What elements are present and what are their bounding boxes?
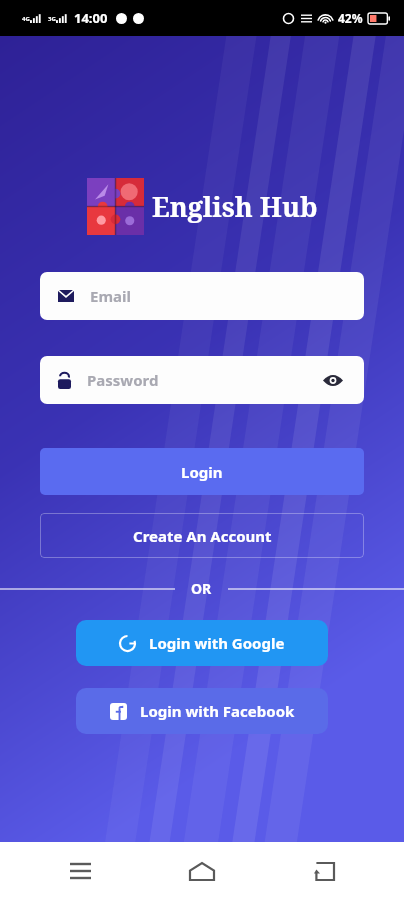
button[interactable]: Login with Facebook (76, 688, 328, 734)
staticText: OR (191, 579, 212, 598)
button[interactable]: Password (40, 356, 364, 404)
staticText: Login with Google (149, 633, 285, 653)
staticText: 14:00 (74, 9, 108, 27)
button[interactable]: Login (40, 448, 364, 495)
staticText: Email (90, 286, 346, 306)
button[interactable]: Home (180, 849, 224, 893)
staticText: Login (181, 462, 223, 482)
button[interactable]: Show password (320, 367, 346, 393)
staticText: 3G (48, 15, 56, 23)
staticText: 4G (22, 15, 30, 23)
staticText: 42% (338, 10, 363, 26)
staticText: Create An Account (133, 526, 272, 546)
button[interactable]: Create An Account (40, 513, 364, 558)
button[interactable]: Email (40, 272, 364, 320)
button[interactable]: Back (302, 849, 346, 893)
staticText: Password (87, 370, 320, 390)
button[interactable]: Recents (58, 849, 102, 893)
staticText: Login with Facebook (140, 701, 295, 721)
button[interactable]: Login with Google (76, 620, 328, 666)
staticText: English Hub (152, 188, 318, 225)
